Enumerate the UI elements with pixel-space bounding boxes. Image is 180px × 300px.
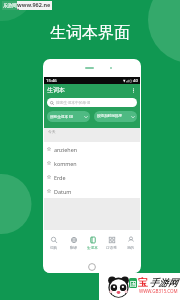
staticText: 搜索生词本中的单词	[56, 100, 91, 105]
staticText: 15:46	[46, 78, 57, 84]
staticText: www.962.net	[17, 1, 52, 10]
button[interactable]: anziehen	[44, 142, 140, 156]
button[interactable]: More options	[129, 86, 138, 95]
button[interactable]: 搜索生词本中的单词	[50, 98, 134, 107]
staticText: Erde	[54, 174, 66, 181]
staticText: 手游网	[149, 277, 178, 289]
button[interactable]: 口语秀	[102, 230, 121, 256]
button[interactable]: 我的	[121, 230, 140, 256]
button[interactable]: Erde	[44, 170, 140, 184]
staticText: WWW.GB315.COM	[139, 288, 178, 294]
button[interactable]: 所有生词本 (3)	[50, 111, 88, 122]
staticText: 宝	[138, 276, 148, 289]
staticText: 口语秀	[106, 246, 117, 251]
staticText: 翻译	[70, 246, 78, 251]
button[interactable]: Datum	[44, 184, 140, 198]
staticText: 词典	[50, 246, 58, 251]
staticText: 国	[130, 279, 137, 288]
staticText: anziehen	[54, 146, 78, 153]
staticText: 按添加时间排序	[97, 114, 123, 119]
staticText: 生词本	[47, 86, 65, 94]
staticText: 40	[133, 78, 138, 84]
button[interactable]: 按添加时间排序	[97, 111, 135, 122]
button[interactable]: 翻译	[64, 230, 83, 256]
button[interactable]: 生词本	[83, 230, 102, 256]
staticText: 我的	[127, 246, 135, 251]
staticText: kommen	[54, 160, 77, 167]
button[interactable]: 词典	[44, 230, 64, 256]
staticText: 今天	[48, 129, 56, 134]
button[interactable]: kommen	[44, 156, 140, 170]
staticText: Datum	[54, 188, 72, 195]
staticText: 生词本界面	[50, 23, 130, 43]
staticText: 生词本	[87, 246, 98, 251]
staticText: 所有生词本 (3)	[50, 114, 74, 119]
staticText: 乐游网	[3, 3, 17, 9]
